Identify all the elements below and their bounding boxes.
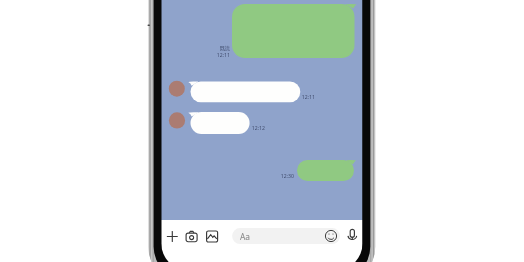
button[interactable]: Voice message [345,229,359,244]
staticText: 12:12 [251,124,265,131]
staticText: 12:30 [280,172,294,179]
staticText: 12:11 [301,93,315,100]
button[interactable]: Camera [184,229,199,245]
button[interactable]: Add [165,229,180,245]
staticText: 12:11 [215,51,230,58]
button[interactable]: Photos [205,229,220,245]
button[interactable]: Emoji [324,229,338,244]
staticText: Aa [240,231,251,242]
staticText: 既読 [215,45,230,52]
button[interactable]: Message input [232,228,340,244]
